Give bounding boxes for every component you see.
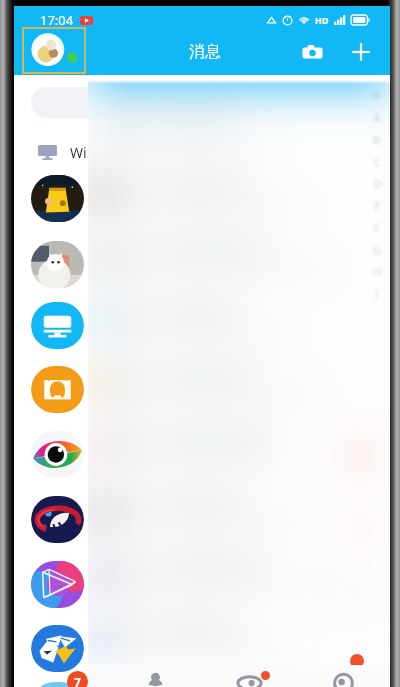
button[interactable]: Windows QQ 在线 [14,134,390,170]
button[interactable]: Discover [202,665,296,687]
staticText: C [374,154,381,169]
staticText: Windows QQ 在线 [70,143,187,162]
staticText: ≡ [372,89,382,102]
button[interactable] [31,625,84,672]
button[interactable] [31,175,84,222]
button[interactable]: Profile [23,28,85,73]
staticText: E [374,198,381,213]
staticText: G [373,242,382,257]
staticText: 17:04 [40,11,74,29]
button[interactable] [88,478,390,541]
button[interactable] [88,289,390,352]
button[interactable]: Contacts [108,665,202,687]
staticText: 消息 [189,42,221,62]
button[interactable] [31,561,84,608]
button[interactable] [31,302,84,349]
staticText: D [373,176,382,191]
button[interactable] [88,226,390,289]
staticText: 7 [74,674,81,687]
staticText: HD [315,14,329,26]
button[interactable]: Camera [295,35,329,69]
staticText: I [375,286,379,301]
button[interactable] [88,352,390,415]
button[interactable]: Profile [296,665,390,687]
staticText: F [374,220,380,235]
button[interactable] [31,496,84,543]
button[interactable]: Add [344,35,378,69]
button[interactable] [88,541,390,604]
button[interactable] [31,431,84,478]
button[interactable] [88,163,390,226]
staticText: A [373,110,381,125]
button[interactable] [31,682,84,687]
button[interactable] [31,87,211,118]
button[interactable] [31,366,84,413]
staticText: H [373,264,382,279]
staticText: B [373,132,381,147]
button[interactable] [88,604,390,667]
button[interactable] [31,241,84,288]
button[interactable] [88,100,390,163]
button[interactable]: Messages [14,665,108,687]
button[interactable] [88,415,390,478]
